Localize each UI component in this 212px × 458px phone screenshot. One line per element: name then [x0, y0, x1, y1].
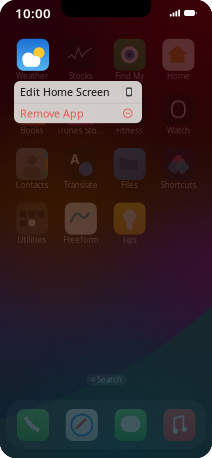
staticText: Weather — [16, 70, 48, 81]
staticText: Translate — [64, 180, 98, 190]
button[interactable]: Weather — [9, 39, 55, 81]
staticText: 10:00 — [15, 4, 51, 22]
staticText: Books — [20, 125, 43, 136]
button[interactable]: Find My — [107, 39, 153, 81]
staticText: Edit Home Screen — [20, 85, 110, 99]
button[interactable]: Messages — [115, 409, 147, 441]
staticText: Home — [167, 70, 190, 81]
staticText: Fitness — [116, 125, 143, 136]
button[interactable]: Utilities — [9, 203, 55, 245]
staticText: Contacts — [15, 180, 48, 190]
staticText: iTunes Store — [58, 125, 104, 136]
staticText: A — [70, 150, 79, 168]
button[interactable]: Shortcuts — [155, 148, 201, 190]
button[interactable]: Books — [9, 93, 55, 135]
button[interactable]: Freeform — [58, 203, 104, 245]
staticText: Remove App — [20, 106, 84, 120]
button[interactable]: Music — [163, 409, 195, 441]
staticText: Watch — [167, 125, 190, 136]
button[interactable]: A — [58, 148, 104, 190]
button[interactable]: iTunes Store — [58, 93, 104, 135]
staticText: Stocks — [69, 70, 93, 81]
button[interactable]: Files — [107, 148, 153, 190]
staticText: Tips — [122, 234, 137, 245]
button[interactable]: Remove App — [14, 103, 142, 123]
staticText: Search — [97, 374, 122, 385]
button[interactable]: Safari — [66, 409, 98, 441]
button[interactable]: Watch — [155, 93, 201, 135]
button[interactable]: Home — [155, 39, 201, 81]
button[interactable]: Search — [86, 374, 127, 385]
button[interactable]: Fitness — [107, 93, 153, 135]
button[interactable]: Edit Home Screen — [14, 81, 142, 103]
staticText: Files — [121, 180, 138, 190]
staticText: Shortcuts — [160, 180, 196, 190]
button[interactable]: Tips — [107, 203, 153, 245]
button[interactable]: Phone — [17, 409, 49, 441]
button[interactable]: Contacts — [9, 148, 55, 190]
staticText: Freeform — [63, 234, 98, 245]
button[interactable]: Stocks — [58, 39, 104, 81]
staticText: Find My — [115, 70, 144, 81]
staticText: Utilities — [17, 234, 46, 245]
